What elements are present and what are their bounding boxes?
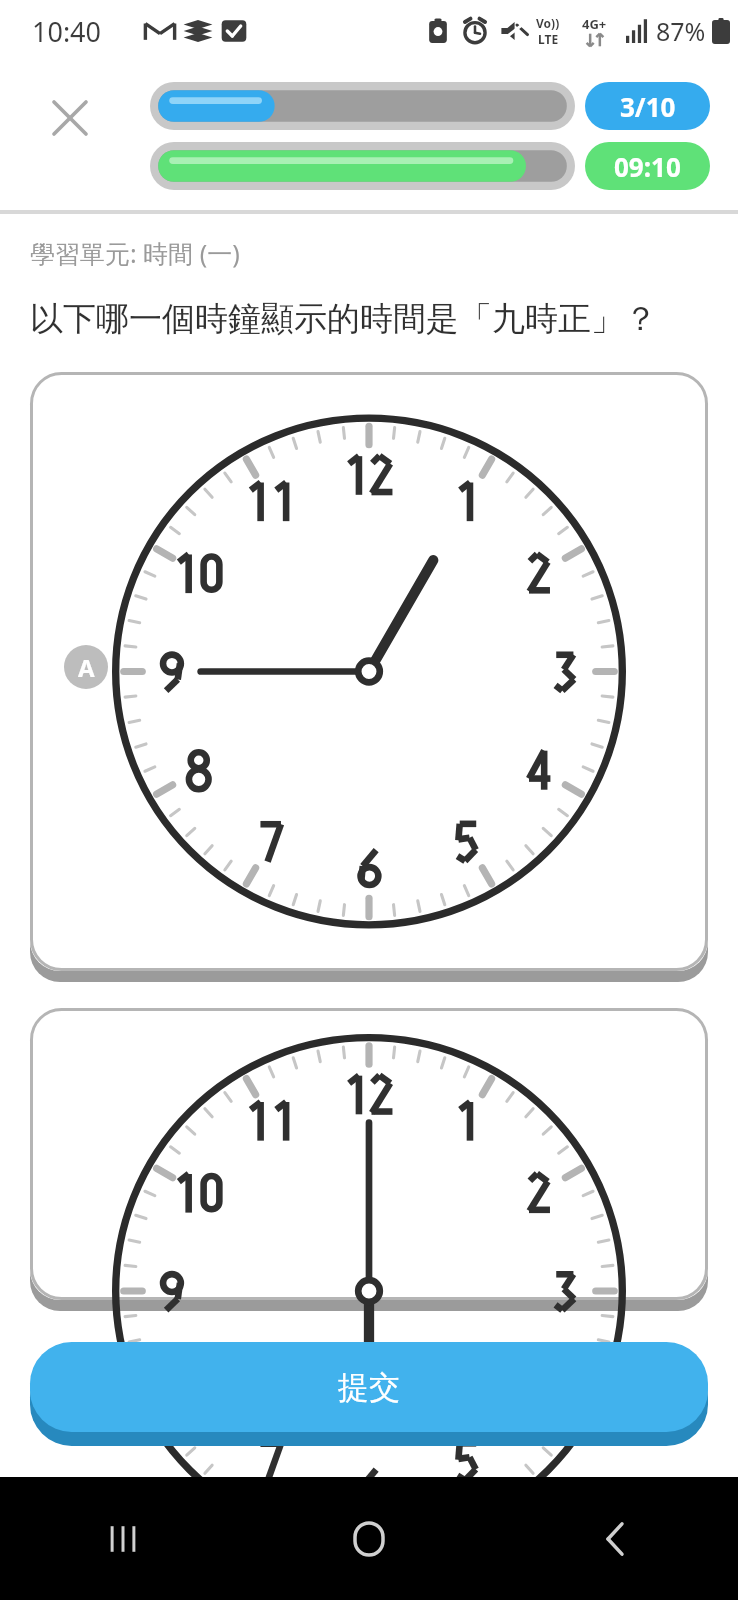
button[interactable]: Back — [492, 1477, 738, 1600]
button[interactable] — [150, 82, 575, 130]
staticText: 提交 — [338, 1368, 400, 1407]
staticText: 87% — [656, 14, 706, 48]
button[interactable]: 09:10 — [585, 142, 710, 190]
staticText: 3/10 — [620, 89, 676, 124]
staticText: 10:40 — [32, 13, 102, 50]
button[interactable]: 提交 — [30, 1342, 708, 1446]
staticText: 4G+ — [582, 15, 607, 33]
button[interactable]: Home — [246, 1477, 492, 1600]
button[interactable]: 3/10 — [585, 82, 710, 130]
staticText: Vo)) — [536, 15, 560, 31]
staticText: 09:10 — [614, 149, 681, 184]
staticText: 學習單元: 時間 (一) — [30, 236, 240, 270]
staticText: A — [78, 651, 95, 684]
staticText: 以下哪一個時鐘顯示的時間是「九時正」？ — [30, 298, 714, 340]
staticText: LTE — [538, 31, 559, 47]
button[interactable] — [150, 142, 575, 190]
button[interactable]: Close — [42, 90, 98, 146]
button[interactable] — [30, 372, 708, 982]
button[interactable]: Recents — [0, 1477, 246, 1600]
button[interactable] — [30, 1008, 708, 1311]
